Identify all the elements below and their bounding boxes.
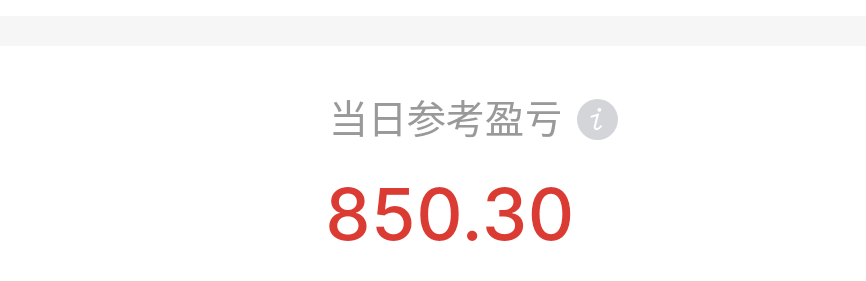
button[interactable]: Info about today's reference profit and … [577, 99, 618, 140]
staticText: 850.30 [325, 170, 575, 257]
staticText: 当日参考盈亏 [329, 88, 564, 144]
button[interactable]: 当日参考盈亏 [329, 91, 618, 147]
